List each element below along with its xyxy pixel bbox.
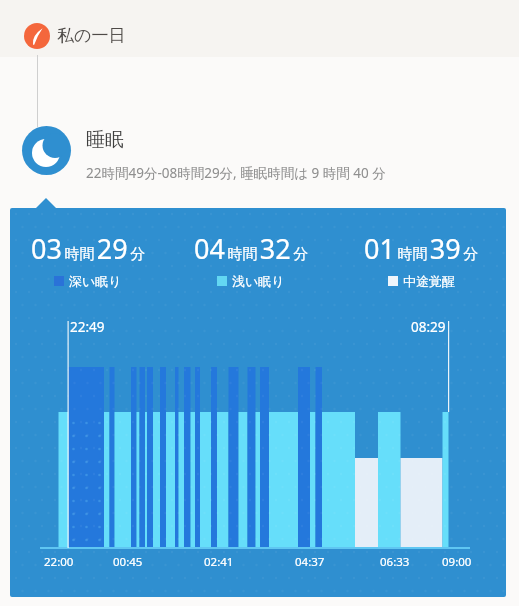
button[interactable]: 睡眠 [86, 128, 386, 182]
staticText: 浅い眠り [232, 273, 285, 289]
staticText: 04:37 [295, 554, 325, 570]
staticText: 02:41 [204, 554, 234, 570]
button[interactable]: 03 時間 29 分 [10, 230, 178, 289]
staticText: 22:00 [44, 554, 74, 570]
staticText: 深い眠り [69, 273, 122, 289]
staticText: 睡眠 [86, 128, 124, 152]
staticText: 06:33 [380, 554, 410, 570]
staticText: 08:29 [411, 318, 446, 336]
staticText: 22時間49分-08時間29分, 睡眠時間は 9 時間 40 分 [86, 164, 386, 182]
staticText: 09:00 [442, 554, 472, 570]
button[interactable]: 04 時間 32 分 [161, 230, 341, 289]
button[interactable]: 私の一日 [0, 7, 519, 64]
button[interactable]: 03 時間 29 分 [10, 208, 506, 597]
staticText: 03 時間 29 分 [31, 230, 146, 267]
staticText: 中途覚醒 [403, 273, 455, 289]
staticText: 22:49 [70, 318, 105, 336]
staticText: 00:45 [113, 554, 143, 570]
button[interactable]: 01 時間 39 分 [331, 230, 506, 289]
staticText: 01 時間 39 分 [364, 230, 479, 267]
staticText: 04 時間 32 分 [194, 230, 309, 267]
staticText: 私の一日 [57, 25, 126, 46]
